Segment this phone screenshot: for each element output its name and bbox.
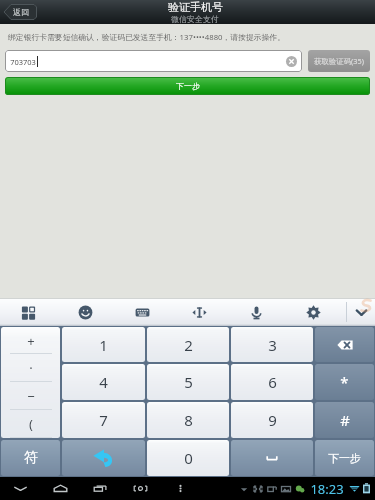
staticText: 0 <box>184 448 193 468</box>
staticText: 703703 <box>10 57 36 67</box>
staticText: 获取验证码(35) <box>314 56 364 66</box>
button[interactable]: Layout <box>0 298 57 326</box>
button[interactable]: Screenshot <box>120 477 160 500</box>
button[interactable]: 6 <box>231 364 313 400</box>
button[interactable]: Settings <box>285 298 342 326</box>
button[interactable]: 5 <box>147 364 229 400</box>
staticText: 返回 <box>13 7 29 17</box>
staticText: 4 <box>99 372 108 392</box>
staticText: 5 <box>184 372 193 392</box>
button[interactable]: Voice input <box>228 298 285 326</box>
button[interactable]: * <box>315 364 374 400</box>
button[interactable]: 9 <box>231 402 313 438</box>
button[interactable]: Recents <box>80 477 120 500</box>
staticText: 18:23 <box>310 480 344 498</box>
staticText: 微信安全支付 <box>171 14 219 24</box>
button[interactable]: 下一步 <box>5 77 370 95</box>
staticText: 9 <box>268 410 277 430</box>
staticText: 7 <box>99 410 108 430</box>
button[interactable]: 获取验证码(35) <box>308 50 370 72</box>
button[interactable]: Undo <box>62 440 145 476</box>
button[interactable]: 3 <box>231 327 313 362</box>
button[interactable]: Backspace <box>315 327 374 362</box>
button[interactable]: Hide keyboard <box>347 298 375 326</box>
staticText: 6 <box>268 372 277 392</box>
staticText: ( <box>29 415 33 433</box>
staticText: 验证手机号 <box>168 0 223 14</box>
button[interactable]: 703703 <box>5 50 302 72</box>
staticText: 绑定银行卡需要短信确认，验证码已发送至手机：137••••4880，请按提示操作… <box>8 32 285 43</box>
button[interactable]: Space <box>231 440 313 476</box>
button[interactable]: 1 <box>62 327 145 362</box>
button[interactable]: Home <box>40 477 80 500</box>
button[interactable]: Emoji <box>57 298 114 326</box>
button[interactable]: # <box>315 402 374 438</box>
button[interactable]: + <box>1 327 60 354</box>
button[interactable]: Move cursor <box>171 298 228 326</box>
button[interactable]: 4 <box>62 364 145 400</box>
staticText: 下一步 <box>328 451 361 465</box>
button[interactable]: 2 <box>147 327 229 362</box>
staticText: − <box>27 387 35 405</box>
staticText: 下一步 <box>176 81 200 91</box>
button[interactable]: 下一步 <box>315 440 374 476</box>
staticText: · <box>29 359 33 377</box>
button[interactable]: 7 <box>62 402 145 438</box>
button[interactable]: 8 <box>147 402 229 438</box>
button[interactable]: Hide keyboard <box>0 477 40 500</box>
button[interactable]: Keyboard <box>114 298 171 326</box>
staticText: 8 <box>184 410 193 430</box>
staticText: + <box>27 332 35 350</box>
staticText: * <box>340 372 349 392</box>
staticText: 符 <box>24 449 38 467</box>
button[interactable]: Menu <box>160 477 200 500</box>
button[interactable]: 0 <box>147 440 229 476</box>
staticText: # <box>340 410 350 430</box>
staticText: 3 <box>268 335 277 355</box>
button[interactable]: · <box>1 354 60 382</box>
staticText: 2 <box>184 335 193 355</box>
button[interactable]: 符 <box>1 440 60 476</box>
button[interactable]: − <box>1 382 60 410</box>
staticText: 1 <box>99 335 108 355</box>
button[interactable]: 返回 <box>4 4 37 20</box>
button[interactable]: ( <box>1 410 60 438</box>
